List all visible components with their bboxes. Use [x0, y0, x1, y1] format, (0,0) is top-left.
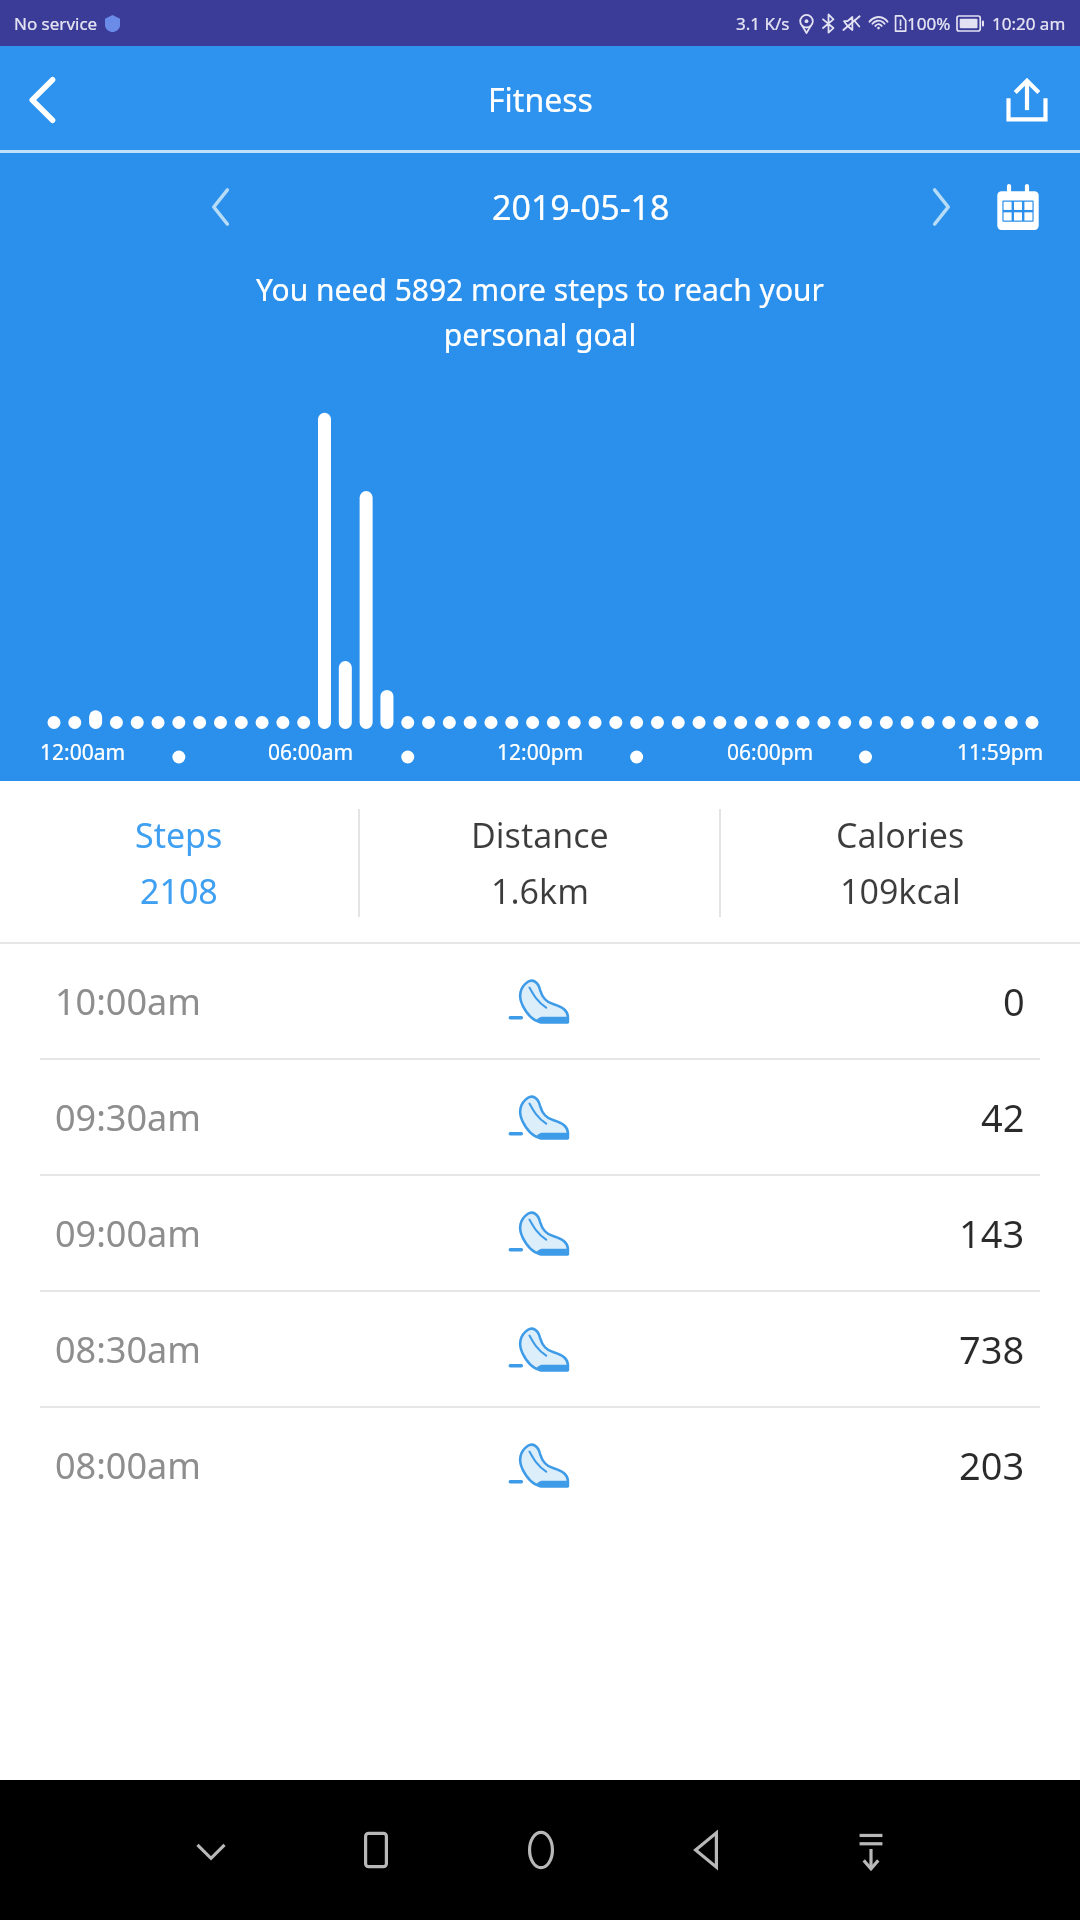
staticText: 12:00pm — [497, 738, 584, 767]
staticText: You need 5892 more steps to reach your p… — [36, 269, 1044, 354]
button[interactable]: 10:00am — [0, 944, 1080, 1058]
button[interactable]: Next day — [910, 176, 972, 238]
staticText: 08:30am — [55, 1325, 201, 1374]
button[interactable]: Steps — [0, 812, 358, 914]
staticText: 109kcal — [840, 868, 961, 914]
staticText: 100% — [907, 12, 951, 35]
button[interactable]: Pick date — [982, 175, 1054, 239]
staticText: Distance — [471, 812, 609, 858]
staticText: 0 — [1003, 975, 1025, 1027]
staticText: Calories — [836, 812, 965, 858]
staticText: 203 — [959, 1439, 1025, 1491]
staticText: 09:00am — [55, 1209, 201, 1258]
button[interactable]: Recents — [293, 1780, 458, 1920]
staticText: 10:20 am — [992, 12, 1066, 35]
button[interactable]: Hide keyboard — [128, 1780, 293, 1920]
button[interactable]: Previous day — [190, 176, 252, 238]
staticText: 06:00am — [268, 738, 354, 767]
button[interactable]: Distance — [360, 812, 719, 914]
staticText: Fitness — [488, 78, 593, 122]
button[interactable]: 09:30am — [0, 1060, 1080, 1174]
staticText: 143 — [959, 1207, 1025, 1259]
button[interactable]: 08:30am — [0, 1292, 1080, 1406]
button[interactable]: Share — [988, 61, 1066, 139]
button[interactable]: 08:00am — [0, 1408, 1080, 1522]
staticText: No service — [14, 12, 98, 35]
button[interactable]: Calories — [721, 812, 1080, 914]
staticText: 08:00am — [55, 1441, 201, 1490]
staticText: 09:30am — [55, 1093, 201, 1142]
button[interactable]: Back — [4, 61, 82, 139]
staticText: 11:59pm — [957, 738, 1044, 767]
staticText: 2108 — [140, 868, 218, 914]
staticText: 06:00pm — [727, 738, 814, 767]
staticText: 10:00am — [55, 977, 201, 1026]
staticText: 2019-05-18 — [492, 184, 670, 230]
staticText: 1.6km — [491, 868, 589, 914]
staticText: 3.1 K/s — [736, 12, 790, 35]
button[interactable]: Hide navigation bar — [788, 1780, 953, 1920]
button[interactable]: 09:00am — [0, 1176, 1080, 1290]
button[interactable]: Home — [458, 1780, 623, 1920]
staticText: 12:00am — [40, 738, 126, 767]
button[interactable]: Back — [623, 1780, 788, 1920]
staticText: 738 — [959, 1323, 1025, 1375]
staticText: Steps — [135, 812, 223, 858]
staticText: 42 — [981, 1091, 1025, 1143]
